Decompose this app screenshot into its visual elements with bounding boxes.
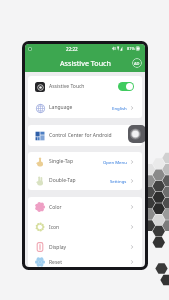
staticText: Control Center for Android xyxy=(49,132,112,139)
button[interactable]: Display xyxy=(28,237,142,257)
button[interactable]: Double-Tap xyxy=(28,171,142,190)
button[interactable]: Control Center for Android xyxy=(28,125,142,146)
staticText: 22:22 xyxy=(66,46,78,52)
button[interactable]: Color xyxy=(28,197,142,217)
staticText: Icon xyxy=(49,224,60,231)
staticText: Open Menu xyxy=(103,159,127,165)
button[interactable]: Icon xyxy=(28,217,142,237)
staticText: Reset xyxy=(49,259,62,266)
button[interactable]: Assistive Touch xyxy=(28,76,142,97)
staticText: 81% xyxy=(127,46,135,51)
staticText: Double-Tap xyxy=(49,177,76,184)
button[interactable]: Language xyxy=(28,97,142,118)
button[interactable]: Reset xyxy=(28,257,142,267)
staticText: Assistive Touch xyxy=(60,58,111,68)
staticText: Settings xyxy=(110,178,127,184)
staticText: Display xyxy=(49,244,67,251)
staticText: Assistive Touch xyxy=(49,83,85,90)
staticText: AD xyxy=(134,61,140,66)
button[interactable]: Assistive touch floating button xyxy=(128,125,145,143)
button[interactable]: Single-Tap xyxy=(28,152,142,171)
staticText: Language xyxy=(49,104,73,111)
staticText: Single-Tap xyxy=(49,158,73,165)
button[interactable]: Account xyxy=(132,58,142,68)
staticText: English xyxy=(112,105,127,111)
staticText: Color xyxy=(49,204,62,211)
